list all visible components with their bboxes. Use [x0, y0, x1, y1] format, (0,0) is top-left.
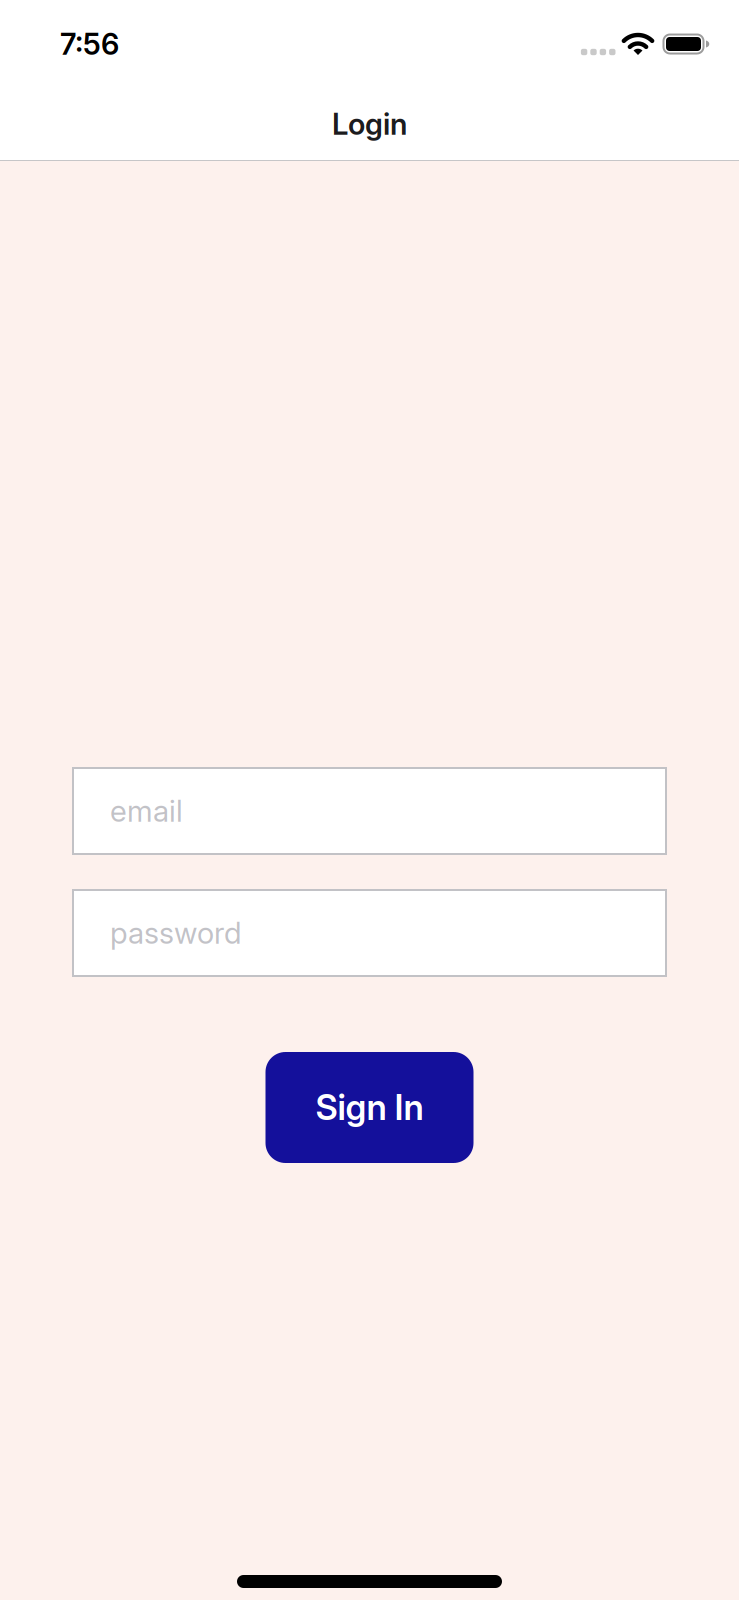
staticText: password	[110, 915, 242, 951]
staticText: email	[110, 793, 183, 829]
secureTextField[interactable]: password	[110, 915, 667, 951]
button[interactable]: Sign In	[265, 1052, 473, 1163]
textField[interactable]: email	[110, 793, 667, 829]
staticText: email	[110, 793, 183, 829]
staticText: password	[110, 915, 242, 951]
staticText: 7:56	[60, 26, 119, 62]
staticText: Sign In	[315, 1086, 423, 1128]
staticText: Login	[332, 106, 407, 142]
navigationBar: Login	[332, 88, 407, 160]
